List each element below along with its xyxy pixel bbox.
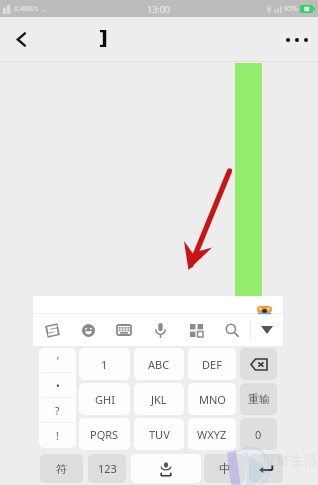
- staticText: 1: [101, 357, 108, 372]
- button[interactable]: 中: [204, 454, 245, 483]
- button[interactable]: !: [39, 423, 76, 448]
- button[interactable]: WXYZ: [188, 418, 236, 450]
- staticText: PQRS: [90, 427, 119, 442]
- button[interactable]: Search: [214, 314, 250, 346]
- staticText: 123: [98, 461, 117, 476]
- button[interactable]: Hide keyboard: [251, 314, 283, 346]
- button[interactable]: Emoji: [70, 314, 106, 346]
- button[interactable]: 符: [40, 454, 83, 483]
- button[interactable]: Sogou input: [34, 314, 70, 346]
- button[interactable]: •: [39, 373, 76, 398]
- staticText: •: [56, 379, 60, 393]
- staticText: DEF: [202, 357, 222, 372]
- button[interactable]: More tools: [178, 314, 214, 346]
- button[interactable]: PQRS: [79, 418, 130, 450]
- button[interactable]: Voice input: [142, 314, 178, 346]
- staticText: 理财生活: [262, 452, 318, 470]
- button[interactable]: Space: [131, 454, 201, 483]
- button[interactable]: Keyboard layout: [106, 314, 142, 346]
- staticText: GHI: [95, 392, 115, 407]
- button[interactable]: MNO: [188, 383, 236, 415]
- button[interactable]: More options: [276, 17, 318, 62]
- button[interactable]: TUV: [134, 418, 184, 450]
- staticText: ’: [57, 354, 59, 368]
- staticText: MNO: [199, 392, 226, 407]
- button[interactable]: Enter: [249, 454, 283, 483]
- staticText: 0.48K/s: [14, 4, 39, 14]
- staticText: JKL: [151, 392, 167, 407]
- button[interactable]: Backspace: [240, 348, 277, 380]
- button[interactable]: Back: [0, 17, 42, 62]
- staticText: 重输: [248, 392, 270, 406]
- button[interactable]: 重输: [240, 383, 277, 415]
- button[interactable]: ?: [39, 398, 76, 423]
- staticText: 13:00: [147, 3, 171, 15]
- staticText: WXYZ: [197, 427, 227, 442]
- staticText: ABC: [148, 357, 170, 372]
- staticText: 符: [56, 462, 67, 476]
- staticText: ｗｗｗ。ｃｏｍ: [266, 468, 301, 474]
- staticText: !: [56, 429, 59, 443]
- staticText: 中: [219, 461, 231, 476]
- button[interactable]: DEF: [188, 348, 236, 380]
- button[interactable]: 0: [240, 418, 277, 450]
- button[interactable]: JKL: [134, 383, 184, 415]
- staticText: …: [41, 4, 47, 14]
- button[interactable]: 123: [88, 454, 126, 483]
- staticText: ?: [55, 404, 60, 418]
- button[interactable]: ’: [39, 348, 76, 373]
- button[interactable]: ABC: [134, 348, 184, 380]
- button[interactable]: Sticker: [256, 301, 272, 317]
- button[interactable]: GHI: [79, 383, 130, 415]
- staticText: 95%: [284, 4, 298, 14]
- button[interactable]: 1: [79, 348, 130, 380]
- staticText: TUV: [149, 427, 170, 442]
- staticText: 0: [255, 427, 262, 442]
